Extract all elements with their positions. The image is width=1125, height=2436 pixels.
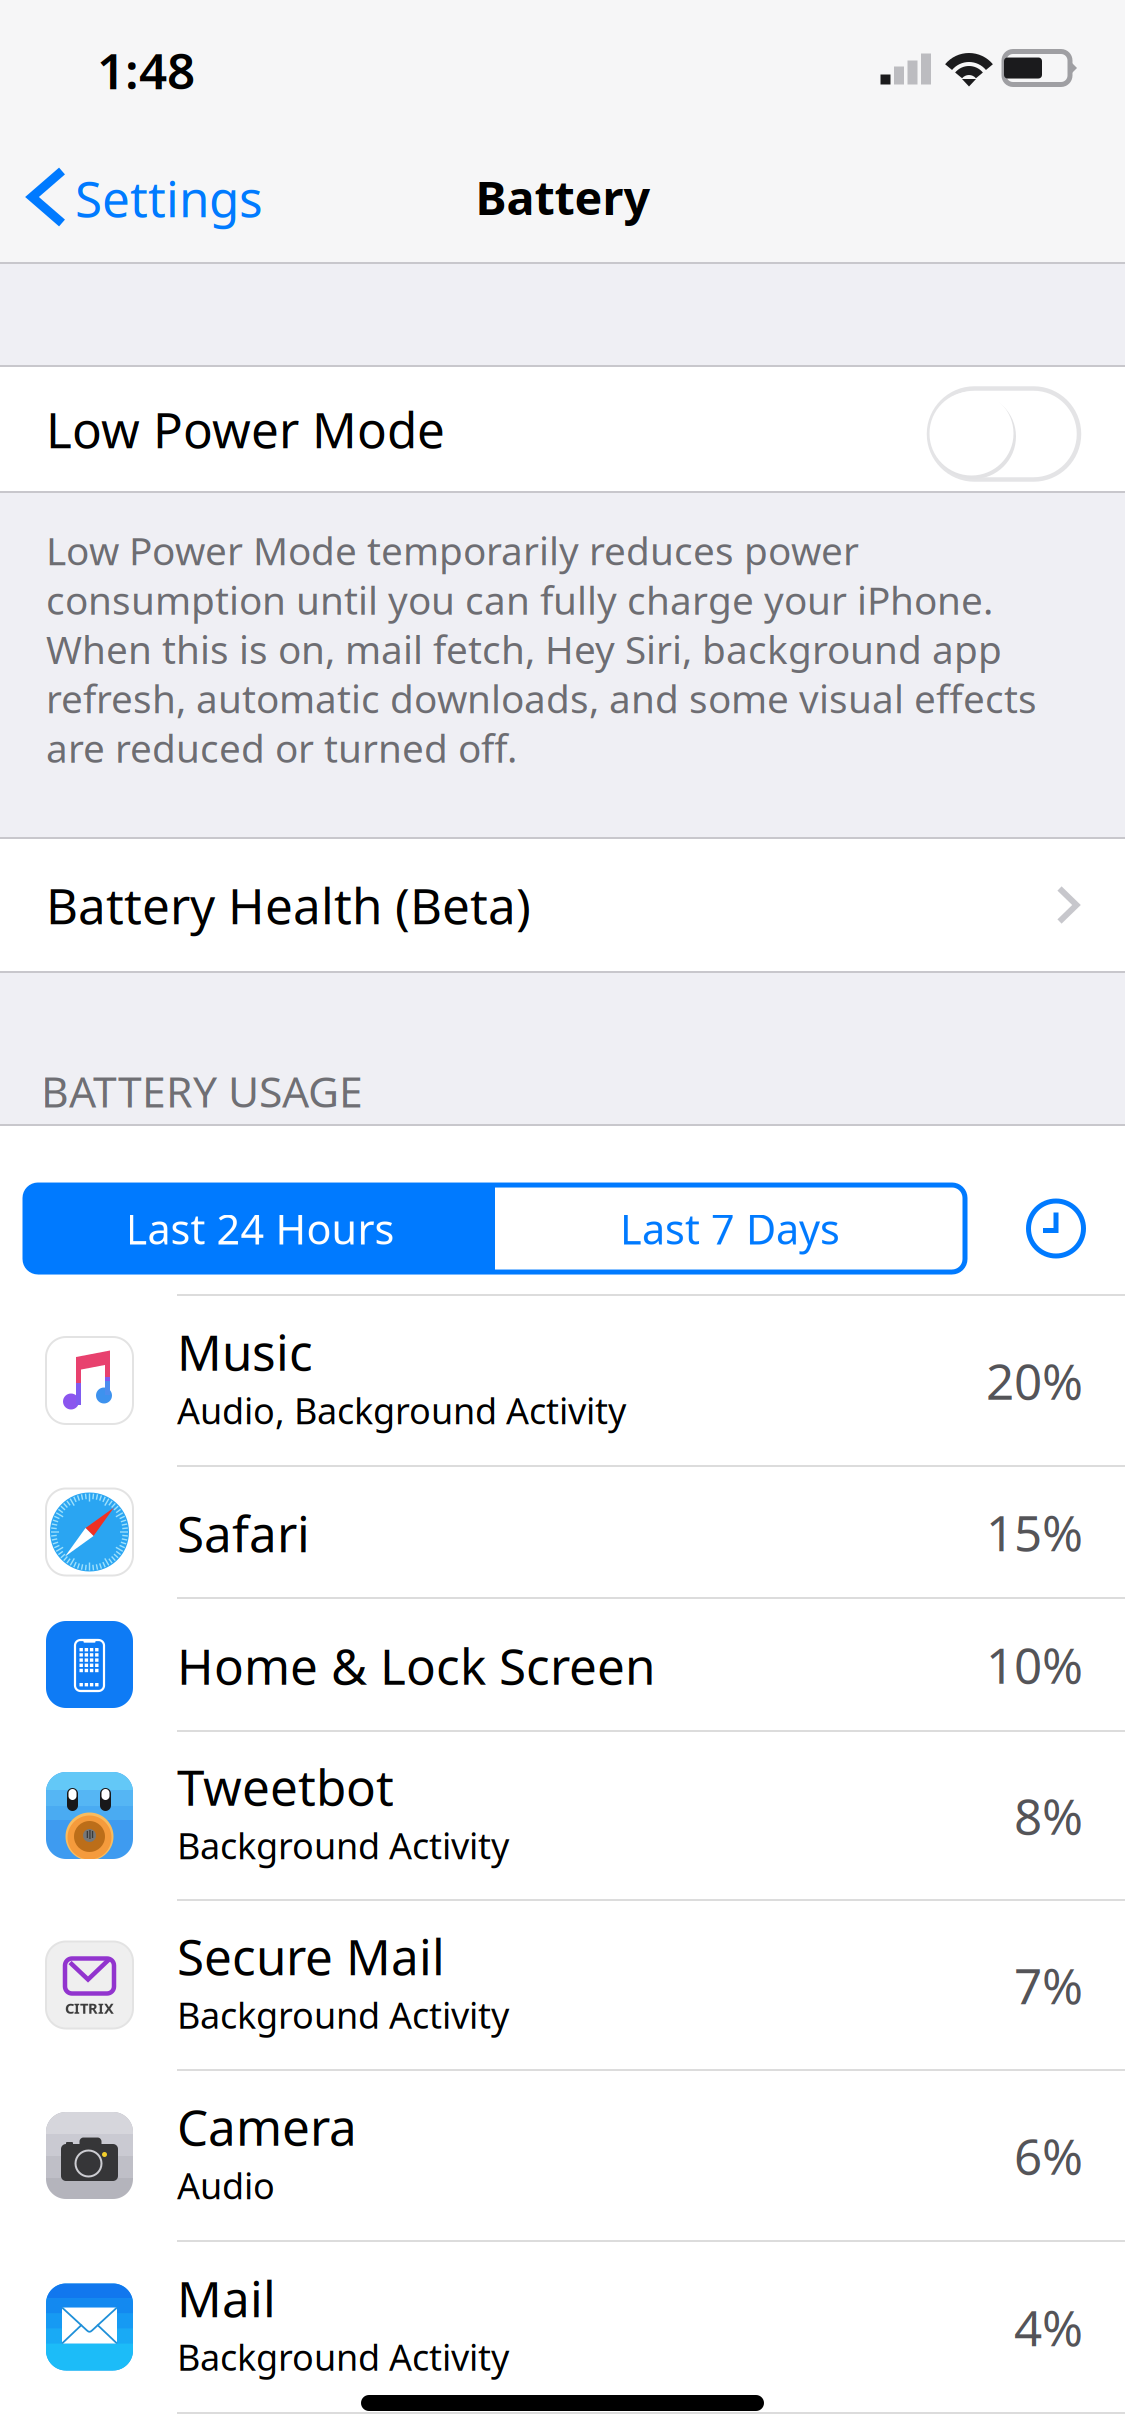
staticText: Audio: [177, 2161, 275, 2209]
staticText: 6%: [1014, 2123, 1083, 2188]
staticText: Home & Lock Screen: [177, 1633, 655, 1698]
staticText: When this is on, mail fetch, Hey Siri, b…: [46, 623, 1002, 675]
staticText: Secure Mail: [177, 1923, 445, 1989]
staticText: Background Activity: [177, 1821, 509, 1869]
button[interactable]: Mail, Background Activity, 4%: [0, 2241, 1125, 2413]
button[interactable]: Camera, Audio, 6%: [0, 2070, 1125, 2241]
staticText: Battery Health (Beta): [46, 872, 531, 938]
button[interactable]: Last 24 Hours: [25, 1185, 495, 1272]
staticText: are reduced or turned off.: [46, 722, 517, 773]
staticText: 8%: [1014, 1783, 1083, 1848]
staticText: CITRIX: [65, 1998, 114, 2018]
staticText: 15%: [986, 1499, 1083, 1565]
staticText: consumption until you can fully charge y…: [46, 574, 993, 625]
button[interactable]: Battery Health (Beta): [0, 838, 1125, 972]
staticText: 4%: [1014, 2294, 1083, 2360]
button[interactable]: Battery usage over time: [1001, 1173, 1111, 1283]
staticText: Safari: [177, 1500, 310, 1566]
staticText: Tweetbot: [177, 1754, 394, 1819]
button[interactable]: Secure Mail, Background Activity, 7%: [0, 1900, 1125, 2070]
staticText: Mail: [177, 2265, 276, 2331]
staticText: Music: [177, 1319, 313, 1384]
staticText: Settings: [75, 165, 263, 231]
staticText: Last 7 Days: [620, 1201, 840, 1256]
button[interactable]: Safari, 15%: [0, 1466, 1125, 1598]
staticText: Last 24 Hours: [125, 1201, 394, 1256]
button[interactable]: Tweetbot, Background Activity, 8%: [0, 1731, 1125, 1900]
staticText: 1:48: [97, 37, 195, 103]
staticText: Background Activity: [177, 1991, 509, 2039]
staticText: Low Power Mode: [46, 396, 445, 462]
staticText: Low Power Mode temporarily reduces power: [46, 525, 859, 576]
button[interactable]: Settings: [0, 131, 370, 263]
staticText: 20%: [986, 1348, 1083, 1413]
staticText: 7%: [1014, 1952, 1083, 2018]
staticText: BATTERY USAGE: [41, 1063, 363, 1119]
button[interactable]: Last 7 Days: [495, 1185, 965, 1272]
staticText: Audio, Background Activity: [177, 1386, 626, 1434]
button[interactable]: Music, Audio, Background Activity, 20%: [0, 1295, 1125, 1466]
staticText: Background Activity: [177, 2333, 509, 2381]
staticText: Camera: [177, 2094, 357, 2159]
button[interactable]: Home & Lock Screen, 10%: [0, 1598, 1125, 1731]
button[interactable]: Low Power Mode: [0, 366, 1125, 492]
staticText: Battery: [475, 166, 650, 228]
staticText: 10%: [986, 1632, 1083, 1697]
staticText: refresh, automatic downloads, and some v…: [46, 673, 1037, 724]
